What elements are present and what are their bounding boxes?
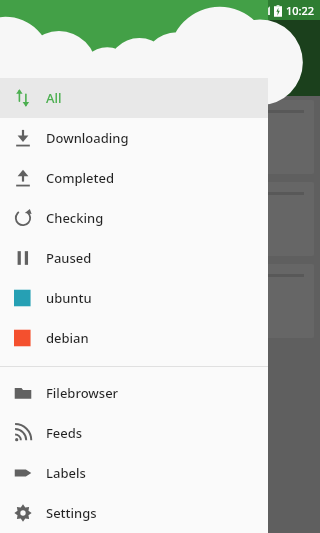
staticText: Free space: 3.4 GB [16, 73, 111, 88]
button[interactable]: Labels [0, 453, 268, 493]
button[interactable]: Peers: 6/13 [6, 100, 314, 174]
staticText: Peers: 60/250 [16, 201, 87, 216]
button[interactable]: Completed [0, 158, 268, 198]
staticText: debian [46, 329, 89, 347]
staticText: Paused [46, 249, 92, 267]
staticText: Checking [46, 209, 104, 227]
staticText: Downloading [46, 129, 129, 147]
button[interactable]: Feeds [0, 413, 268, 453]
button[interactable]: All [0, 78, 268, 118]
button[interactable]: More options [274, 28, 314, 68]
button[interactable]: Downloading [0, 118, 268, 158]
button[interactable]: Paused [0, 238, 268, 278]
staticText: Labels [46, 464, 86, 482]
staticText: Feeds [46, 424, 83, 442]
staticText: Peers: 29/250 [16, 283, 87, 298]
staticText: ubuntu [46, 289, 92, 307]
staticText: Completed [46, 169, 115, 187]
staticText: 10:22 [286, 3, 315, 18]
button[interactable]: Settings [0, 493, 268, 533]
button[interactable]: ubuntu [0, 278, 268, 318]
button[interactable]: debian [0, 318, 268, 358]
button[interactable]: Peers: 60/250 [6, 182, 314, 256]
staticText: Down: 0 B/s [16, 298, 78, 313]
button[interactable]: Checking [0, 198, 268, 238]
staticText: Peers: 6/13 [16, 119, 74, 134]
staticText: Filebrowser [46, 384, 119, 402]
button[interactable]: Filebrowser [0, 373, 268, 413]
button[interactable]: Peers: 29/250 [6, 264, 314, 338]
staticText: All [46, 89, 62, 107]
staticText: Down: 7 B/s [16, 134, 78, 149]
staticText: Down: 23.7 kB/s [16, 216, 99, 231]
staticText: Settings [46, 504, 97, 522]
